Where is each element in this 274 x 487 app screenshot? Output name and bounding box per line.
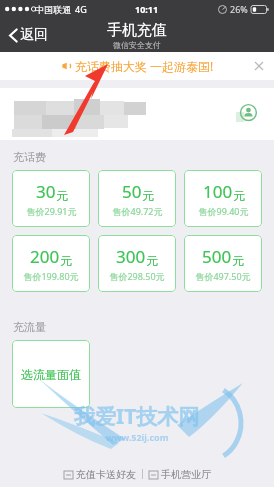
button[interactable]: 选择联系人 bbox=[234, 101, 260, 127]
staticText: 26% bbox=[230, 3, 248, 15]
button[interactable]: 返回 bbox=[6, 23, 51, 47]
staticText: 微信安全支付 bbox=[113, 40, 161, 50]
button[interactable]: 选流量面值 bbox=[12, 340, 90, 408]
staticText: 元 bbox=[142, 188, 154, 203]
staticText: 元 bbox=[56, 188, 68, 203]
staticText: 充话费 bbox=[13, 150, 46, 164]
staticText: 充值卡送好友 bbox=[76, 468, 136, 481]
staticText: 售价99.40元 bbox=[198, 205, 249, 217]
button[interactable]: 300 bbox=[98, 235, 176, 292]
staticText: 200 bbox=[30, 245, 60, 268]
staticText: 选流量面值 bbox=[21, 367, 81, 382]
staticText: 500 bbox=[202, 245, 232, 268]
staticText: 充流量 bbox=[13, 320, 46, 334]
staticText: 4G bbox=[75, 3, 87, 15]
staticText: 元 bbox=[233, 188, 245, 203]
staticText: 返回 bbox=[20, 26, 48, 44]
staticText: 元 bbox=[146, 253, 158, 268]
staticText: 售价49.72元 bbox=[112, 205, 163, 217]
staticText: 售价199.80元 bbox=[23, 270, 79, 282]
button[interactable]: 充话费抽大奖 一起游泰国! bbox=[0, 52, 274, 80]
button[interactable]: 充值卡送好友 bbox=[58, 464, 142, 485]
staticText: 100 bbox=[203, 180, 233, 203]
staticText: 30 bbox=[36, 180, 56, 203]
staticText: 售价29.91元 bbox=[26, 205, 77, 217]
staticText: 300 bbox=[116, 245, 146, 268]
staticText: 售价497.50元 bbox=[195, 270, 251, 282]
staticText: www.52ij.com bbox=[106, 431, 169, 443]
staticText: 手机营业厅 bbox=[161, 468, 211, 481]
button[interactable]: 200 bbox=[12, 235, 90, 292]
button[interactable]: 关闭 bbox=[250, 57, 268, 75]
button[interactable]: 50 bbox=[98, 170, 176, 227]
button[interactable]: 100 bbox=[184, 170, 262, 227]
button[interactable]: 500 bbox=[184, 235, 262, 292]
button[interactable]: 选择联系人 bbox=[0, 88, 274, 140]
staticText: 充话费抽大奖 一起游泰国! bbox=[75, 58, 214, 74]
button[interactable]: 30 bbox=[12, 170, 90, 227]
staticText: 元 bbox=[60, 253, 72, 268]
staticText: 10:11 bbox=[135, 3, 159, 15]
staticText: 50 bbox=[122, 180, 142, 203]
staticText: 售价298.50元 bbox=[109, 270, 165, 282]
button[interactable]: 手机营业厅 bbox=[143, 464, 217, 485]
staticText: 手机充值 bbox=[107, 21, 167, 40]
staticText: 元 bbox=[232, 253, 244, 268]
staticText: 中国联通 bbox=[35, 4, 71, 15]
staticText: 我爱IT技术网 bbox=[74, 402, 200, 431]
